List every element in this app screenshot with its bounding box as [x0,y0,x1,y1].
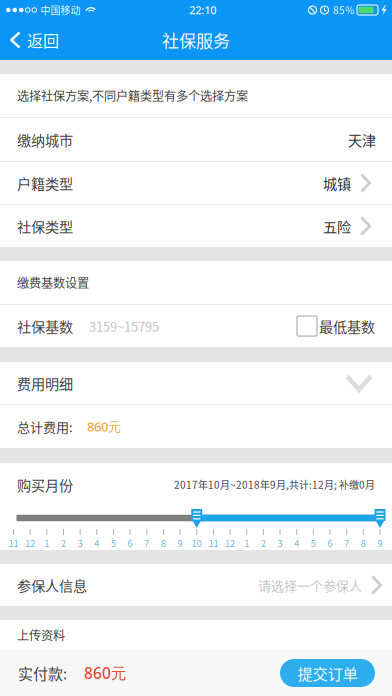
button[interactable]: 社保类型 [0,205,392,247]
staticText: 4 [94,536,99,549]
staticText: 缴费基数设置 [17,274,89,291]
staticText: 860元 [87,418,121,435]
staticText: 22:10 [189,2,216,18]
staticText: 天津 [348,129,376,150]
staticText: 5 [111,536,116,549]
staticText: 中国移动 [40,3,80,17]
staticText: 85% [333,3,354,17]
staticText: 10 [192,536,202,549]
staticText: 3159~15795 [89,316,159,335]
staticText: 1 [244,536,249,549]
staticText: 860元 [84,663,126,683]
staticText: 9 [178,536,183,549]
staticText: 请选择一个参保人 [258,575,362,594]
staticText: 6 [128,536,133,549]
staticText: 3 [78,536,83,549]
button[interactable]: 参保人信息 [0,564,392,606]
staticText: 11 [208,536,218,549]
staticText: 9 [377,536,382,549]
button[interactable]: 最低基数 [297,310,375,342]
staticText: 8 [161,536,166,549]
staticText: 12 [225,536,235,549]
staticText: 8 [361,536,366,549]
staticText: 选择社保方案,不同户籍类型有多个选择方案 [17,87,248,104]
staticText: 1 [44,536,49,549]
staticText: 购买月份 [17,474,73,495]
staticText: 总计费用: [17,417,73,436]
staticText: 2 [261,536,266,549]
staticText: 6 [327,536,332,549]
button[interactable]: 返回 [0,20,67,60]
staticText: 户籍类型 [17,173,73,193]
staticText: 11 [8,536,18,549]
staticText: 费用明细 [17,373,73,393]
staticText: 城镇 [323,173,351,193]
staticText: 7 [144,536,149,549]
staticText: 提交订单 [297,662,357,684]
button[interactable]: 提交订单 [280,659,375,687]
staticText: 4 [294,536,299,549]
staticText: 返回 [27,28,59,52]
staticText: 7 [344,536,349,549]
staticText: 3 [277,536,282,549]
button[interactable]: 缴纳城市 [0,118,392,161]
button[interactable]: 费用明细 [0,362,392,404]
staticText: 社保类型 [17,216,73,236]
staticText: 2017年10月~2018年9月,共计:12月; 补缴0月 [174,477,375,492]
staticText: 社保服务 [162,28,230,52]
staticText: 上传资料 [17,626,65,644]
staticText: 5 [311,536,316,549]
button[interactable]: 户籍类型 [0,162,392,204]
staticText: 实付款: [18,662,67,684]
staticText: 2 [61,536,66,549]
staticText: 社保基数 [17,316,73,336]
staticText: 缴纳城市 [17,129,73,150]
staticText: 12 [25,536,35,549]
staticText: 最低基数 [319,316,375,336]
staticText: 参保人信息 [17,575,87,595]
staticText: 五险 [323,216,351,236]
